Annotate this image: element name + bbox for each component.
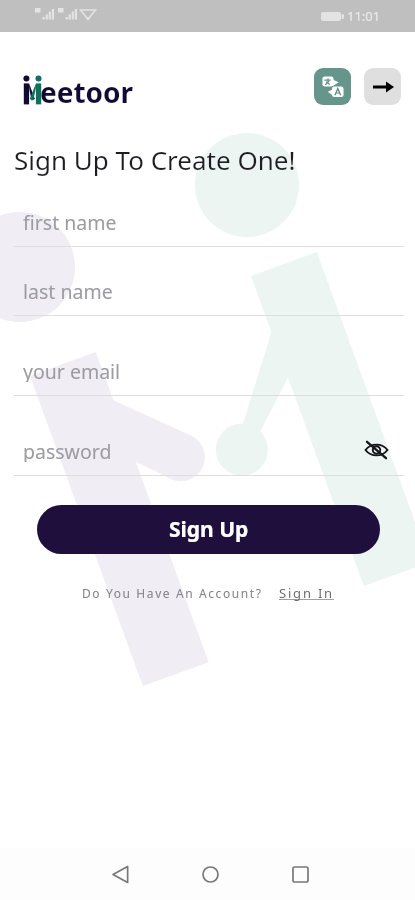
button[interactable]: Translate	[314, 68, 351, 105]
staticText: last name	[23, 278, 113, 302]
staticText: Sign Up	[169, 515, 249, 544]
button[interactable]: Recent apps	[280, 854, 320, 894]
staticText: first name	[23, 209, 117, 233]
staticText: eetoor	[40, 73, 134, 111]
button[interactable]: Show password	[361, 438, 391, 462]
button[interactable]: Home	[190, 854, 230, 894]
staticText: password	[23, 438, 112, 462]
staticText: 11:01	[347, 7, 381, 25]
staticText: Sign In	[279, 584, 334, 602]
staticText: your email	[23, 358, 121, 382]
button[interactable]: Sign Up	[37, 505, 380, 554]
staticText: Do You Have An Account?	[82, 585, 263, 601]
button[interactable]: Sign In	[279, 584, 334, 602]
staticText: Sign Up To Create One!	[14, 142, 296, 177]
button[interactable]: Back	[100, 854, 140, 894]
button[interactable]: Next	[364, 68, 401, 105]
